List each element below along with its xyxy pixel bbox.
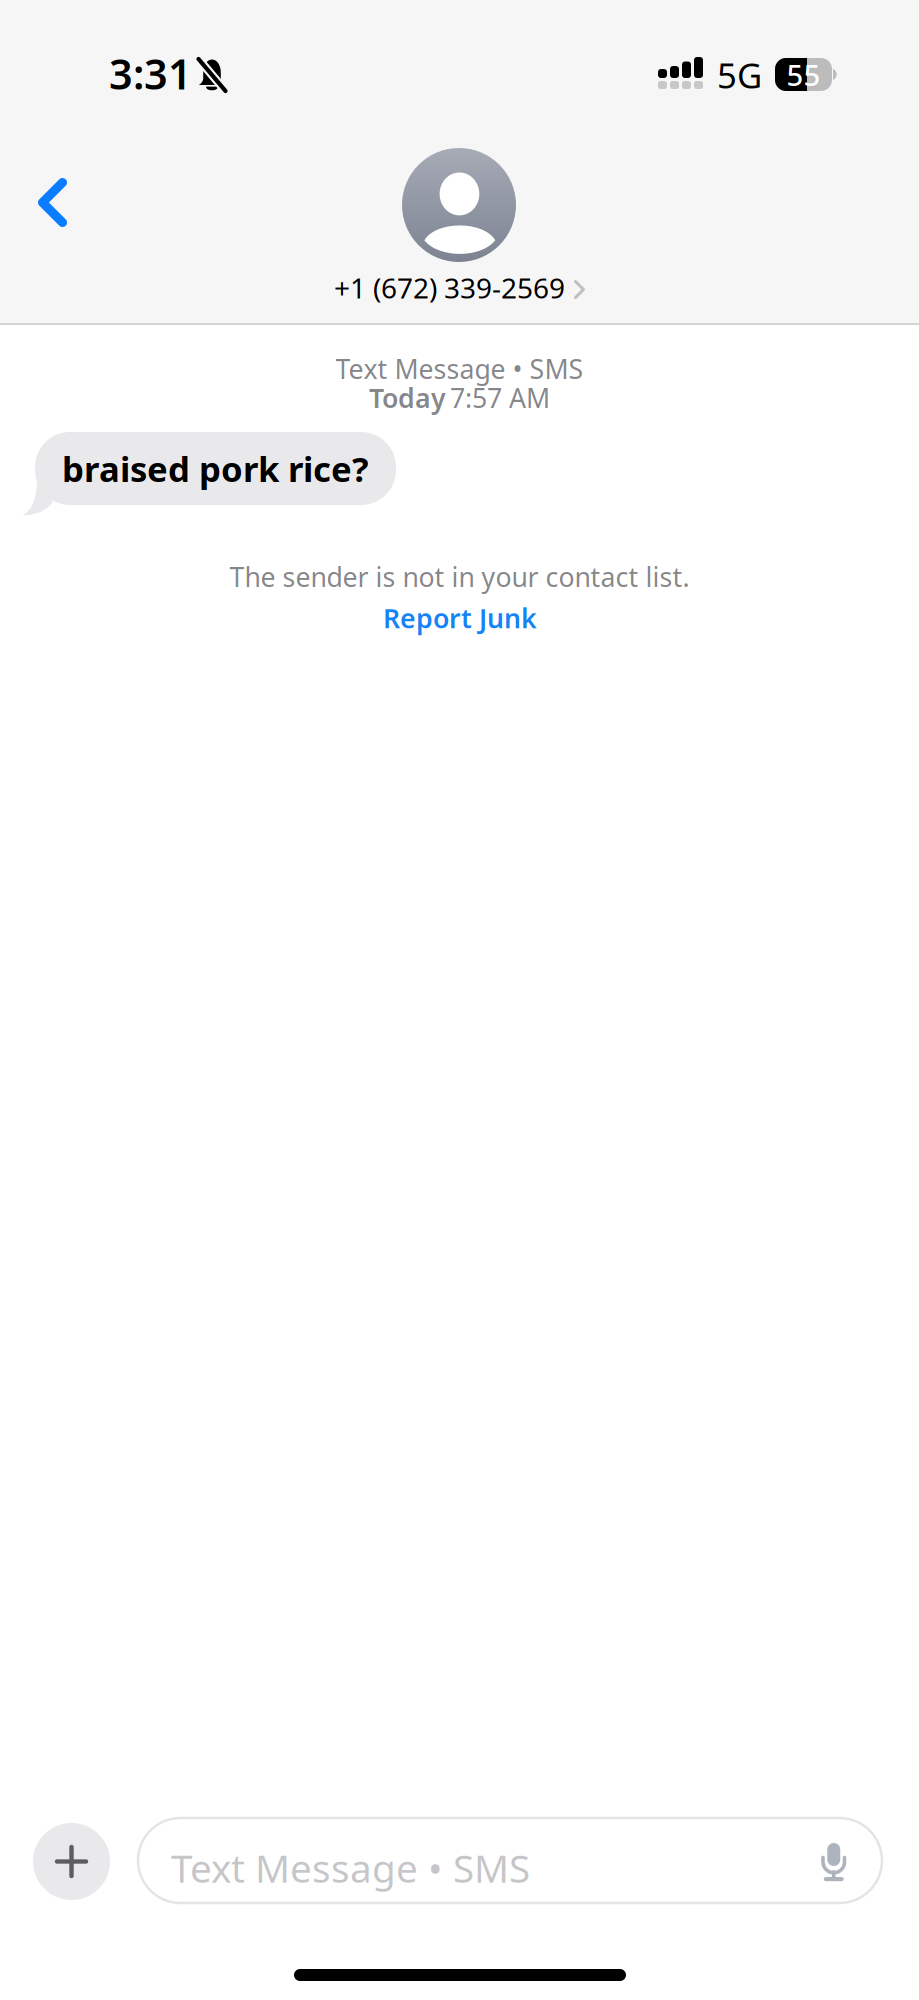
staticText: The sender is not in your contact list. xyxy=(229,559,689,594)
staticText: 7:57 AM xyxy=(450,380,550,415)
staticText: Text Message • SMS xyxy=(171,1842,530,1893)
staticText: Text Message • SMS xyxy=(335,351,583,386)
staticText: 3:31 xyxy=(109,46,192,101)
button[interactable]: Report Junk xyxy=(310,597,610,639)
button[interactable]: Add attachment xyxy=(33,1823,110,1900)
staticText: 5G xyxy=(717,52,762,98)
staticText: +1 (672) 339-2569 xyxy=(334,269,565,306)
staticText: braised pork rice? xyxy=(62,445,369,491)
staticText: Report Junk xyxy=(383,600,537,636)
button[interactable]: +1 (672) 339-2569 xyxy=(309,148,609,308)
staticText: Today xyxy=(369,380,446,415)
button[interactable]: Text Message • SMS xyxy=(138,1818,882,1903)
button[interactable]: Back xyxy=(0,157,100,252)
staticText: 55 xyxy=(786,55,820,94)
